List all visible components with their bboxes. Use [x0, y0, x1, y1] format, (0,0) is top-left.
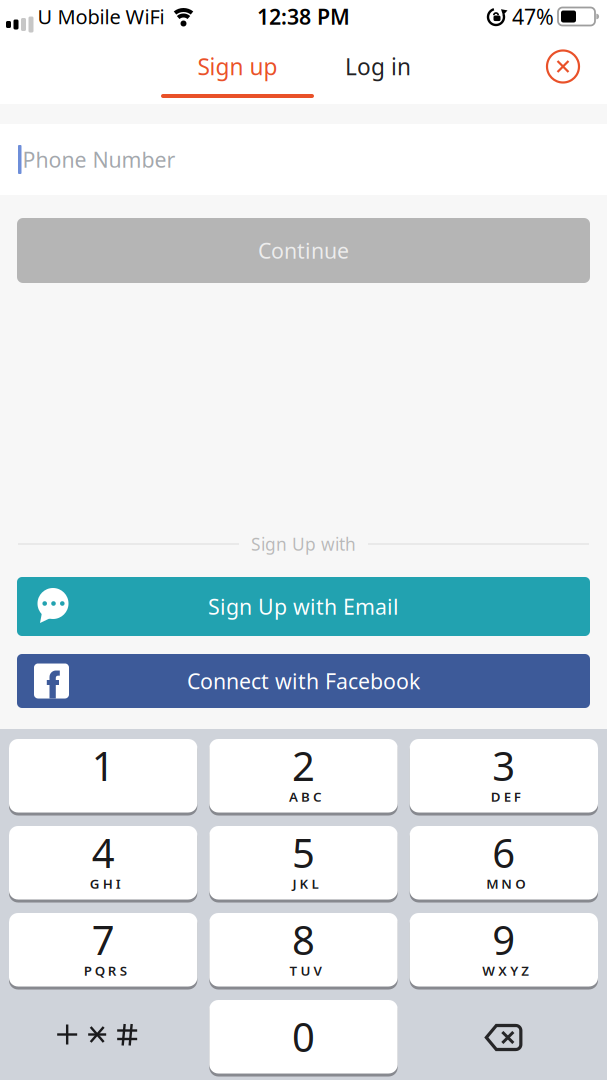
button[interactable]: 0 [209, 1000, 398, 1075]
staticText: Sign up [197, 51, 277, 81]
staticText: 7 [92, 913, 115, 966]
button[interactable]: Sign up [161, 51, 314, 81]
staticText: JKL [292, 875, 318, 892]
button[interactable]: Sign Up with Email [17, 577, 590, 636]
staticText: DEF [491, 788, 521, 805]
staticText: 9 [492, 913, 515, 966]
staticText: 4 [92, 826, 115, 879]
staticText: 1 [92, 739, 115, 792]
button[interactable]: 5 [209, 826, 398, 901]
staticText: 8 [292, 913, 315, 966]
staticText: Connect with Facebook [187, 667, 420, 695]
staticText: 2 [292, 739, 315, 792]
button[interactable]: Log in [314, 51, 442, 81]
staticText: GHI [90, 875, 121, 892]
button[interactable]: Delete [410, 1000, 598, 1075]
button[interactable]: 1 [9, 739, 197, 814]
button[interactable]: 8 [209, 913, 398, 988]
button[interactable]: 9 [410, 913, 598, 988]
button[interactable]: 7 [9, 913, 197, 988]
staticText: PQRS [84, 962, 127, 979]
button[interactable]: Connect with Facebook [17, 654, 590, 708]
staticText: Log in [345, 51, 411, 81]
button[interactable]: 2 [209, 739, 398, 814]
staticText: Continue [258, 236, 349, 265]
staticText: 47% [512, 2, 554, 31]
staticText: MNO [486, 875, 525, 892]
staticText: Phone Number [22, 145, 175, 174]
button[interactable]: Symbols [9, 1000, 197, 1075]
staticText: 5 [292, 826, 315, 879]
staticText: Sign Up with Email [208, 592, 399, 621]
staticText: ABC [289, 788, 322, 805]
staticText: 3 [492, 739, 515, 792]
staticText: WXYZ [482, 962, 529, 979]
staticText: Sign Up with [251, 532, 356, 555]
button[interactable]: 4 [9, 826, 197, 901]
button[interactable]: 3 [410, 739, 598, 814]
staticText: 12:38 PM [257, 2, 350, 31]
button[interactable]: Continue [17, 218, 590, 283]
staticText: TUV [289, 962, 321, 979]
staticText: U Mobile WiFi [37, 3, 164, 30]
button[interactable]: Phone Number [0, 124, 607, 195]
button[interactable]: 6 [410, 826, 598, 901]
staticText: 6 [492, 826, 515, 879]
button[interactable]: Close [547, 50, 579, 82]
staticText: 0 [292, 1010, 315, 1063]
